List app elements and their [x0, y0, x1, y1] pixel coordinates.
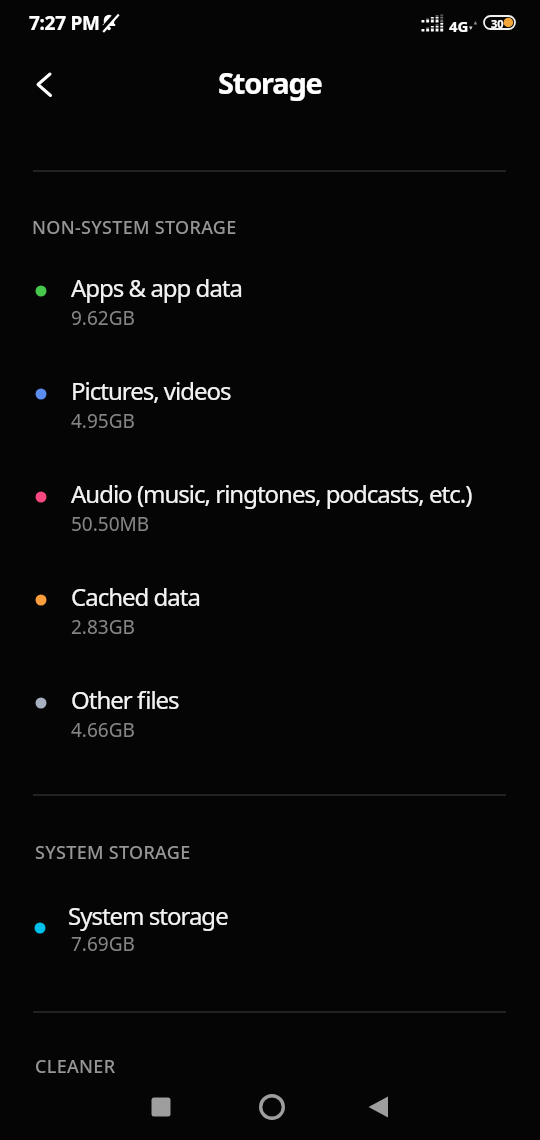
staticText: NON-SYSTEM STORAGE	[32, 215, 237, 240]
staticText: 4G	[449, 16, 469, 36]
staticText: Storage	[218, 63, 322, 102]
staticText: 4.95GB	[71, 408, 135, 434]
staticText: 50.50MB	[71, 511, 150, 537]
staticText: 4.66GB	[71, 717, 135, 743]
staticText: CLEANER	[35, 1054, 116, 1079]
staticText: 7.69GB	[71, 931, 135, 957]
staticText: 30	[491, 16, 504, 31]
staticText: SYSTEM STORAGE	[35, 840, 191, 865]
staticText: 2.83GB	[71, 614, 135, 640]
staticText: Audio (music, ringtones, podcasts, etc.)	[71, 477, 472, 510]
staticText: Cached data	[71, 580, 200, 613]
staticText: System storage	[68, 899, 228, 932]
staticText: 9.62GB	[71, 305, 135, 331]
staticText: Apps & app data	[71, 271, 242, 304]
staticText: Other files	[71, 683, 179, 716]
staticText: Pictures, videos	[71, 374, 231, 407]
staticText: 7:27 PM	[29, 10, 100, 36]
